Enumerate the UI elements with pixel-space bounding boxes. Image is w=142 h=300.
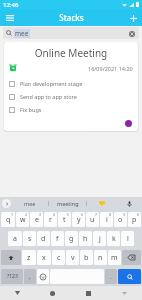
button[interactable]: 4: [44, 212, 57, 227]
staticText: .: [110, 273, 112, 281]
button[interactable]: d: [37, 231, 50, 246]
staticText: 16/09/2021 14:20: [88, 65, 133, 72]
staticText: ?123: [7, 273, 18, 280]
staticText: v: [71, 253, 75, 263]
staticText: u: [90, 215, 95, 225]
button[interactable]: meeting: [49, 200, 86, 207]
button[interactable]: 8: [100, 212, 113, 227]
button[interactable]: a: [8, 231, 22, 246]
button[interactable]: Recent apps: [70, 286, 106, 300]
button[interactable]: c: [52, 250, 65, 265]
button[interactable]: Plan development stage: [4, 77, 138, 90]
button[interactable]: l: [121, 231, 134, 246]
staticText: Online Meeting: [4, 46, 138, 60]
button[interactable]: Add new stack: [127, 12, 139, 24]
button[interactable]: mee: [11, 200, 48, 207]
button[interactable]: More options: [2, 199, 11, 208]
staticText: mee: [24, 200, 36, 207]
button[interactable]: .: [105, 269, 117, 284]
staticText: 5: [67, 212, 70, 217]
staticText: l: [127, 234, 129, 244]
staticText: b: [84, 253, 89, 263]
button[interactable]: x: [37, 250, 51, 265]
button[interactable]: Back: [0, 286, 35, 300]
staticText: t: [63, 215, 66, 225]
button[interactable]: 1: [1, 212, 15, 227]
button[interactable]: h: [79, 231, 92, 246]
button[interactable]: 6: [72, 212, 85, 227]
staticText: 0: [137, 212, 140, 217]
staticText: d: [41, 234, 46, 244]
button[interactable]: Send app to app store: [4, 90, 138, 103]
button[interactable]: f: [51, 231, 64, 246]
button[interactable]: k: [107, 231, 120, 246]
button[interactable]: 9: [114, 212, 127, 227]
staticText: p: [132, 215, 137, 225]
button[interactable]: 7: [86, 212, 99, 227]
staticText: mee: [15, 29, 29, 38]
staticText: q: [6, 215, 11, 225]
button[interactable]: Voice input: [116, 201, 142, 207]
button[interactable]: Shift: [1, 250, 21, 265]
button[interactable]: Home: [35, 286, 70, 300]
staticText: 8: [109, 212, 112, 217]
button[interactable]: s: [23, 231, 36, 246]
button[interactable]: n: [94, 250, 107, 265]
staticText: a: [13, 234, 17, 244]
button[interactable]: Fix bugs: [4, 103, 138, 116]
staticText: 3: [39, 212, 42, 217]
button[interactable]: z: [22, 250, 36, 265]
button[interactable]: Search: [118, 269, 141, 284]
button[interactable]: Open navigation menu: [4, 12, 16, 24]
button[interactable]: ?123: [1, 269, 23, 284]
staticText: f: [56, 234, 59, 244]
staticText: h: [83, 234, 88, 244]
button[interactable]: 2: [16, 212, 29, 227]
button[interactable]: b: [80, 250, 93, 265]
button[interactable]: Emoji: [37, 269, 49, 284]
staticText: 6: [81, 212, 84, 217]
staticText: g: [69, 234, 74, 244]
staticText: j: [99, 234, 101, 244]
button[interactable]: m: [108, 250, 121, 265]
staticText: 9: [123, 212, 126, 217]
staticText: Fix bugs: [20, 106, 42, 113]
staticText: meeting: [57, 200, 79, 207]
button[interactable]: Online Meeting: [4, 42, 138, 131]
button[interactable]: Hide keyboard: [106, 286, 142, 300]
button[interactable]: v: [66, 250, 79, 265]
staticText: 1: [11, 212, 14, 217]
staticText: n: [98, 253, 103, 263]
staticText: ,: [29, 273, 31, 281]
button[interactable]: g: [65, 231, 78, 246]
staticText: 7: [95, 212, 98, 217]
button[interactable]: Backspace: [122, 250, 141, 265]
button[interactable]: j: [93, 231, 106, 246]
staticText: i: [106, 215, 108, 225]
button[interactable]: 0: [128, 212, 141, 227]
staticText: z: [27, 253, 31, 263]
staticText: r: [49, 215, 52, 225]
staticText: e: [35, 215, 39, 225]
staticText: c: [57, 253, 61, 263]
button[interactable]: 5: [58, 212, 71, 227]
staticText: x: [42, 253, 46, 263]
staticText: s: [28, 234, 32, 244]
staticText: Plan development stage: [20, 80, 83, 87]
staticText: Send app to app store: [20, 93, 77, 100]
staticText: 2: [25, 212, 28, 217]
staticText: o: [118, 215, 123, 225]
staticText: w: [20, 215, 26, 225]
staticText: m: [111, 253, 118, 263]
button[interactable]: Heart emoji: [87, 201, 116, 206]
staticText: 12:46: [3, 1, 19, 9]
button[interactable]: ,: [24, 269, 36, 284]
button[interactable]: mee: [3, 27, 139, 39]
staticText: 4: [53, 212, 56, 217]
staticText: k: [112, 234, 116, 244]
button[interactable]: 3: [30, 212, 43, 227]
staticText: y: [77, 215, 81, 225]
button[interactable]: Clear search: [127, 29, 136, 38]
staticText: Stacks: [59, 12, 84, 23]
